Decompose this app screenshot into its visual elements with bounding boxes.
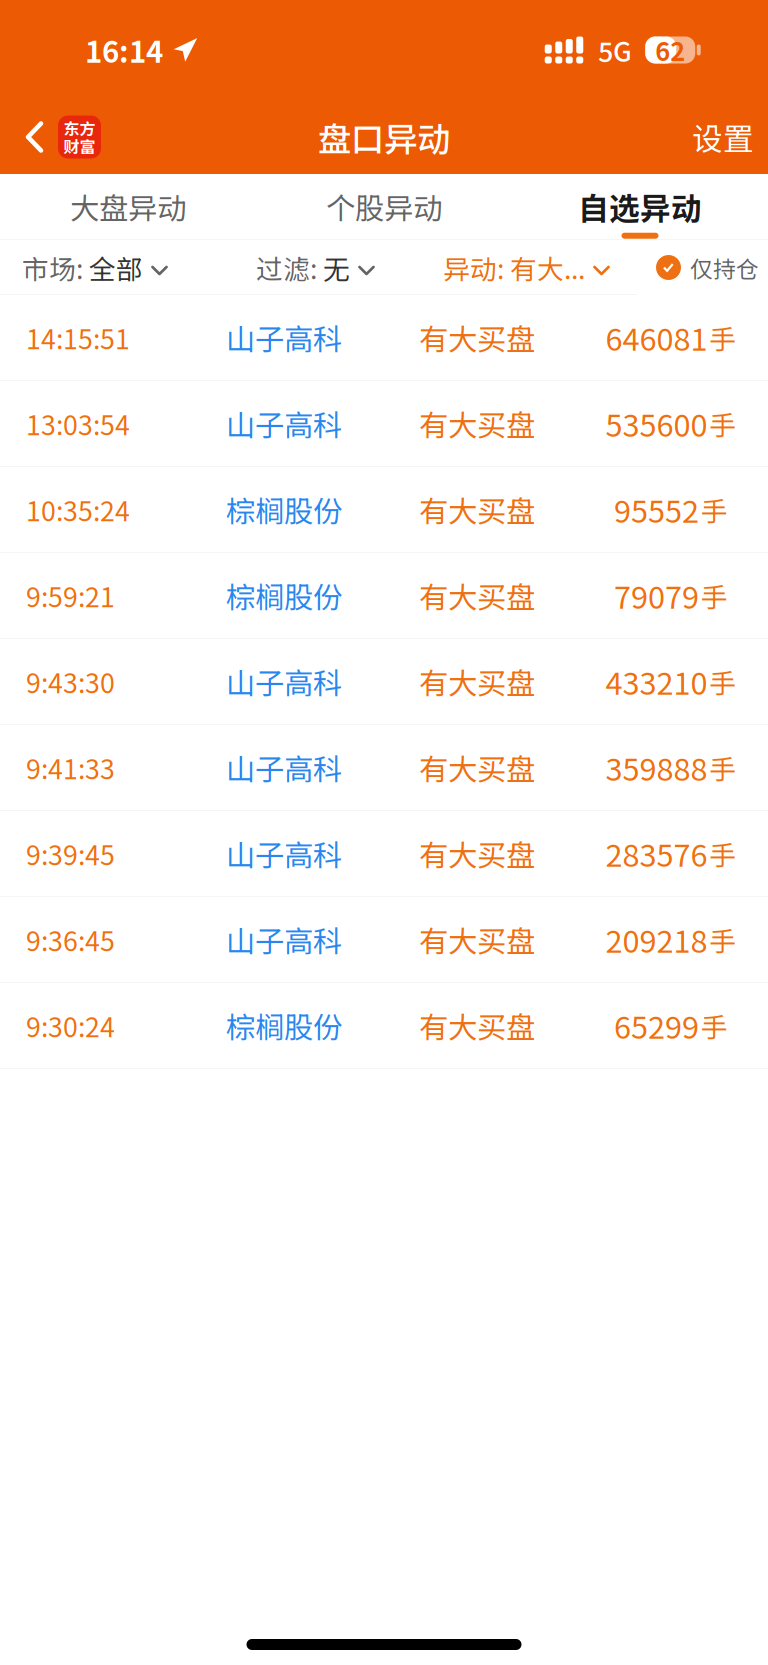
staticText: 异动: [443,248,504,287]
staticText: 手 [701,1006,728,1045]
button[interactable]: 过滤: [256,248,375,287]
button[interactable]: 9:36:45 [0,897,768,983]
staticText: 棕榈股份 [226,488,342,531]
staticText: 9:59:21 [26,576,115,615]
staticText: 10:35:24 [26,490,130,529]
staticText: 手 [709,318,736,357]
staticText: 手 [701,490,728,529]
staticText: 有大买盘 [419,746,535,789]
button[interactable]: 10:35:24 [0,467,768,553]
button[interactable]: 设置 [672,100,768,174]
staticText: 无 [317,248,350,287]
staticText: 9:39:45 [26,834,115,873]
staticText: 盘口异动 [318,113,450,161]
staticText: 13:03:54 [26,404,130,443]
staticText: 209218 [605,917,707,962]
button[interactable]: 返回 东方财富 [0,100,110,174]
staticText: 山子高科 [226,832,342,875]
staticText: 手 [709,662,736,701]
staticText: 95552 [614,487,699,532]
button[interactable]: 9:41:33 [0,725,768,811]
staticText: 东方 [63,116,95,140]
staticText: 手 [709,404,736,443]
staticText: 大盘异动 [70,185,186,228]
staticText: 棕榈股份 [226,1004,342,1047]
staticText: 财富 [63,134,95,158]
staticText: 设置 [692,115,754,159]
staticText: 个股异动 [326,185,442,228]
staticText: 9:43:30 [26,662,115,701]
staticText: 有大买盘 [419,660,535,703]
staticText: 手 [709,920,736,959]
button[interactable]: 异动: [443,248,610,287]
staticText: 16:14 [85,29,163,71]
button[interactable]: 自选异动 [512,174,768,239]
staticText: 有大买盘 [419,316,535,359]
staticText: 仅持仓 [690,251,759,284]
staticText: 有大买盘 [419,574,535,617]
staticText: 山子高科 [226,316,342,359]
button[interactable]: 大盘异动 [0,174,256,239]
staticText: 棕榈股份 [226,574,342,617]
staticText: 65299 [614,1003,699,1048]
staticText: 有大买盘 [419,1004,535,1047]
staticText: 有大买盘 [419,402,535,445]
staticText: 9:41:33 [26,748,115,787]
staticText: 山子高科 [226,660,342,703]
staticText: 全部 [83,248,143,287]
staticText: 有大... [504,248,585,287]
staticText: 山子高科 [226,918,342,961]
staticText: 手 [709,748,736,787]
staticText: 79079 [614,573,699,618]
staticText: 9:30:24 [26,1006,115,1045]
staticText: 646081 [605,315,707,360]
button[interactable]: 13:03:54 [0,381,768,467]
staticText: 有大买盘 [419,918,535,961]
staticText: 433210 [605,659,707,704]
staticText: 有大买盘 [419,488,535,531]
button[interactable]: 9:43:30 [0,639,768,725]
staticText: 自选异动 [578,184,702,229]
button[interactable]: 9:59:21 [0,553,768,639]
button[interactable]: 市场: [22,248,168,287]
staticText: 过滤: [256,248,317,287]
staticText: 有大买盘 [419,832,535,875]
button[interactable]: 9:39:45 [0,811,768,897]
staticText: 手 [701,576,728,615]
staticText: 市场: [22,248,83,287]
staticText: 359888 [605,745,707,790]
button[interactable]: 仅持仓 [646,240,768,295]
button[interactable]: 个股异动 [256,174,512,239]
staticText: 山子高科 [226,746,342,789]
staticText: 山子高科 [226,402,342,445]
button[interactable]: 14:15:51 [0,295,768,381]
staticText: 62 [655,32,685,68]
staticText: 283576 [605,831,707,876]
staticText: 14:15:51 [26,318,130,357]
staticText: 535600 [605,401,707,446]
staticText: 5G [598,31,632,69]
staticText: 手 [709,834,736,873]
button[interactable]: 9:30:24 [0,983,768,1069]
staticText: 9:36:45 [26,920,115,959]
